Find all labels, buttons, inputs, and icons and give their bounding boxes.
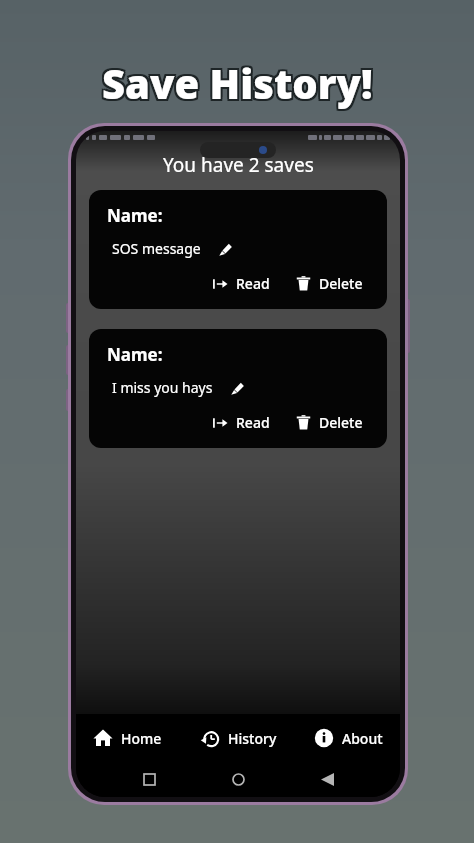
staticText: About	[342, 729, 383, 748]
button[interactable]: Home	[88, 722, 167, 754]
button[interactable]: Back	[311, 763, 343, 795]
staticText: SOS message	[112, 239, 201, 258]
staticText: Read	[236, 413, 270, 432]
button[interactable]: Edit name	[225, 375, 249, 399]
staticText: Save History!	[102, 58, 373, 112]
staticText: Save History!	[100, 58, 371, 112]
button[interactable]: Name:	[89, 190, 387, 309]
staticText: Save History!	[102, 56, 373, 110]
staticText: Save History!	[104, 56, 375, 110]
button[interactable]: Name:	[89, 329, 387, 448]
staticText: Save History!	[100, 54, 371, 108]
button[interactable]: History	[195, 722, 282, 754]
staticText: Read	[236, 274, 270, 293]
staticText: Name:	[107, 343, 163, 366]
button[interactable]: Edit name	[213, 236, 237, 260]
button[interactable]: About	[309, 722, 388, 754]
button[interactable]: Delete	[293, 410, 366, 435]
button[interactable]: Read	[209, 271, 273, 296]
staticText: Save History!	[100, 56, 371, 110]
button[interactable]: Delete	[293, 271, 366, 296]
staticText: Save History!	[104, 54, 375, 108]
staticText: I miss you hays	[112, 378, 213, 397]
staticText: Save History!	[102, 54, 373, 108]
staticText: Home	[121, 729, 162, 748]
staticText: You have 2 saves	[163, 152, 314, 178]
button[interactable]: Read	[209, 410, 273, 435]
staticText: Delete	[319, 274, 363, 293]
button[interactable]: Home	[222, 763, 254, 795]
staticText: History	[228, 729, 277, 748]
staticText: Name:	[107, 204, 163, 227]
staticText: Delete	[319, 413, 363, 432]
button[interactable]: Recents	[133, 763, 165, 795]
staticText: Save History!	[104, 58, 375, 112]
